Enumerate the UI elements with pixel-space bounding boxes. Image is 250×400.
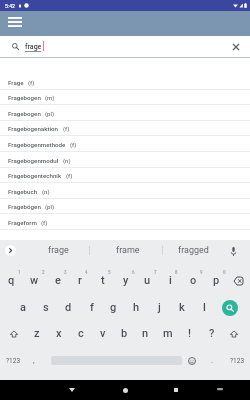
staticText: w (30, 274, 39, 287)
staticText: r (78, 274, 82, 287)
button[interactable]: p (205, 267, 228, 294)
button[interactable]: h (125, 294, 148, 321)
button[interactable]: u (136, 267, 159, 294)
staticText: c (78, 327, 84, 340)
button[interactable]: Back (62, 380, 82, 400)
staticText: (f) (70, 141, 77, 148)
button[interactable]: g (102, 294, 125, 321)
button[interactable]: More suggestions (5, 245, 16, 256)
button[interactable]: Open navigation menu (4, 11, 25, 32)
button[interactable]: a (11, 294, 34, 321)
button[interactable]: Voice input (226, 244, 240, 258)
staticText: (f) (28, 79, 35, 86)
button[interactable]: j (148, 294, 171, 321)
staticText: t (101, 274, 105, 287)
staticText: v (100, 327, 106, 340)
button[interactable]: Fragebogen (0, 105, 250, 121)
button[interactable]: Fragebogentechnik (0, 167, 250, 183)
staticText: . (211, 356, 214, 365)
staticText: (n) (63, 157, 71, 164)
button[interactable]: v (91, 320, 114, 347)
button[interactable]: Fragebogenmodul (0, 152, 250, 168)
button[interactable]: fragged (165, 240, 221, 261)
button[interactable]: s (34, 294, 57, 321)
button[interactable]: ? (200, 320, 223, 347)
button[interactable]: n (134, 320, 157, 347)
button[interactable]: Fragebogenmethode (0, 136, 250, 152)
button[interactable]: q (0, 267, 23, 294)
staticText: 2 (42, 270, 45, 275)
button[interactable]: d (57, 294, 80, 321)
button[interactable]: l (193, 294, 216, 321)
staticText: 4 (85, 270, 88, 275)
staticText: Fragebuch (8, 188, 38, 195)
staticText: (f) (66, 172, 73, 179)
staticText: e (55, 274, 61, 287)
button[interactable]: Recent apps (166, 380, 186, 400)
staticText: frage (48, 245, 69, 256)
button[interactable]: c (69, 320, 92, 347)
staticText: 5:42 (5, 3, 16, 9)
button[interactable]: ?123 (224, 347, 250, 374)
staticText: q (8, 274, 15, 287)
staticText: b (121, 327, 128, 340)
staticText: fragged (178, 245, 209, 256)
staticText: Fragebogen (8, 94, 41, 101)
button[interactable]: Fragebuch (0, 183, 250, 199)
button[interactable]: i (159, 267, 182, 294)
staticText: 1 (18, 270, 21, 275)
staticText: ! (188, 327, 191, 340)
button[interactable]: o (182, 267, 205, 294)
staticText: ? (209, 327, 215, 340)
button[interactable]: b (113, 320, 136, 347)
button[interactable]: Comma (26, 347, 42, 374)
button[interactable]: Shift (2, 320, 25, 347)
button[interactable]: z (25, 320, 48, 347)
button[interactable]: Backspace (227, 267, 250, 294)
button[interactable]: y (114, 267, 137, 294)
button[interactable]: Hide keyboard (210, 380, 230, 400)
staticText: Frageform (8, 219, 37, 226)
staticText: p (213, 274, 220, 287)
staticText: i (169, 274, 172, 287)
button[interactable]: k (170, 294, 193, 321)
button[interactable]: Fragebogen (0, 89, 250, 105)
button[interactable]: Frageform (0, 214, 250, 230)
staticText: h (133, 301, 140, 314)
button[interactable]: Fragebogenaktion (0, 120, 250, 136)
button[interactable]: Home (115, 380, 135, 400)
button[interactable]: Shift (222, 320, 245, 347)
staticText: y (123, 274, 129, 287)
button[interactable]: frame (100, 240, 156, 261)
button[interactable]: m (156, 320, 179, 347)
button[interactable]: ?123 (0, 347, 26, 374)
staticText: 6 (132, 270, 135, 275)
button[interactable]: Clear search (229, 40, 243, 54)
button[interactable]: f (80, 294, 103, 321)
button[interactable]: w (23, 267, 46, 294)
staticText: m (163, 327, 173, 340)
staticText: (pl) (45, 203, 55, 210)
button[interactable]: e (46, 267, 69, 294)
staticText: frame (116, 245, 140, 256)
staticText: 0 (223, 270, 226, 275)
staticText: z (34, 327, 40, 340)
button[interactable]: ! (178, 320, 201, 347)
button[interactable]: Frage (0, 74, 250, 90)
staticText: Fragebogenmethode (8, 141, 66, 148)
button[interactable]: Emoji (184, 347, 200, 374)
staticText: a (20, 301, 26, 314)
button[interactable]: frage (30, 240, 86, 261)
button[interactable]: x (47, 320, 70, 347)
button[interactable]: Search (218, 294, 241, 321)
staticText: frage (25, 43, 42, 51)
staticText: Fragebogentechnik (8, 172, 62, 179)
button[interactable]: r (68, 267, 91, 294)
staticText: f (90, 301, 94, 314)
staticText: d (65, 301, 72, 314)
button[interactable]: t (91, 267, 114, 294)
staticText: k (179, 301, 185, 314)
button[interactable]: Fragebögen (0, 198, 250, 214)
